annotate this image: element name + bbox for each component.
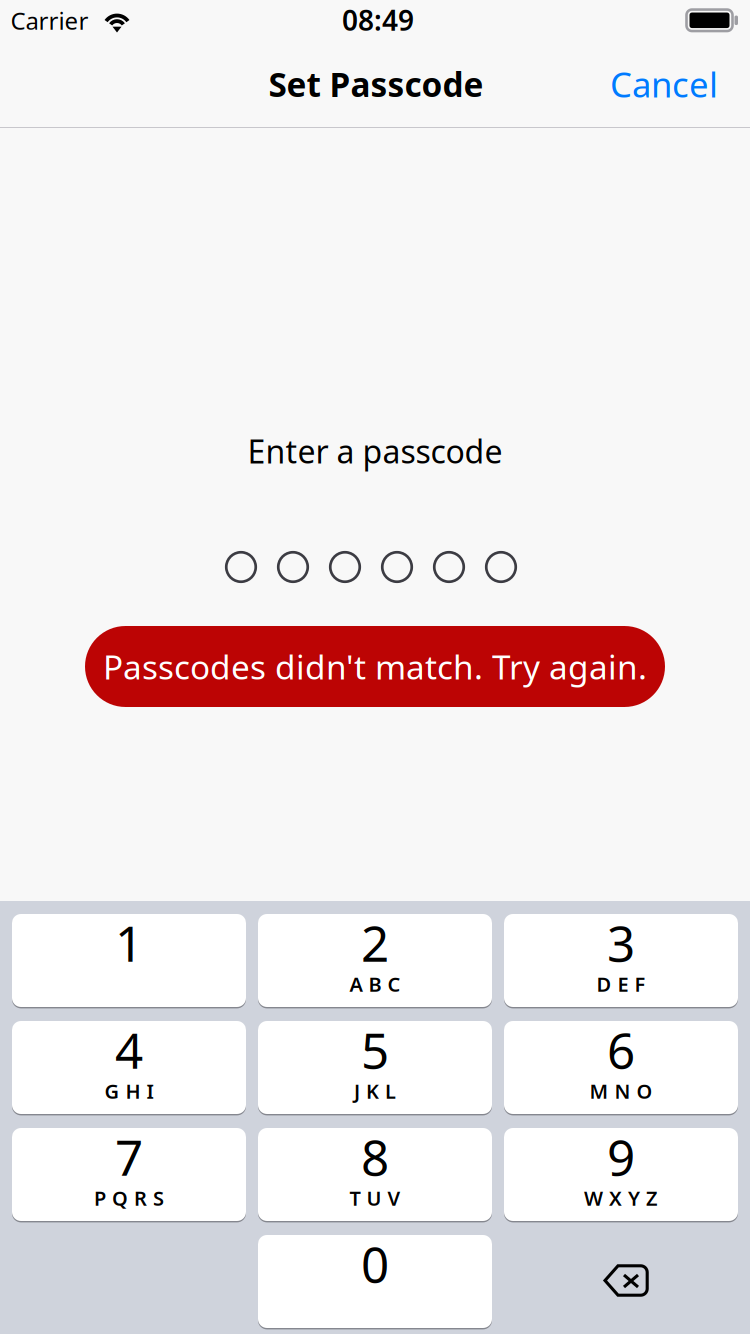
button[interactable]: 1 (12, 914, 246, 1007)
staticText: T U V (349, 1185, 400, 1211)
staticText: G H I (104, 1078, 153, 1104)
staticText: 5 (361, 1017, 389, 1082)
staticText: 1 (115, 910, 143, 975)
button[interactable]: 3 (504, 914, 738, 1007)
staticText: 2 (361, 910, 389, 975)
staticText: Set Passcode (268, 62, 483, 106)
button[interactable]: 4 (12, 1021, 246, 1114)
button[interactable]: Cancel (594, 47, 734, 121)
staticText: 8 (361, 1124, 389, 1189)
button[interactable]: 7 (12, 1128, 246, 1221)
staticText: Passcodes didn't match. Try again. (103, 644, 647, 689)
staticText: Carrier (10, 5, 88, 36)
staticText: 3 (607, 910, 635, 975)
staticText: Cancel (610, 61, 718, 107)
staticText: 6 (607, 1017, 635, 1082)
button[interactable]: 0 (258, 1235, 492, 1328)
staticText: 4 (115, 1017, 143, 1082)
button[interactable]: 8 (258, 1128, 492, 1221)
staticText: 0 (361, 1231, 389, 1296)
staticText: 9 (607, 1124, 635, 1189)
staticText: P Q R S (94, 1185, 164, 1211)
staticText: Enter a passcode (247, 430, 502, 472)
staticText: M N O (589, 1078, 652, 1104)
staticText: A B C (349, 971, 400, 997)
button[interactable]: 5 (258, 1021, 492, 1114)
staticText: 7 (115, 1124, 143, 1189)
staticText: D E F (596, 971, 645, 997)
staticText: J K L (354, 1078, 396, 1104)
staticText: W X Y Z (584, 1185, 658, 1211)
button[interactable]: 6 (504, 1021, 738, 1114)
button[interactable]: Delete (509, 1234, 743, 1327)
button[interactable]: 2 (258, 914, 492, 1007)
button[interactable]: 9 (504, 1128, 738, 1221)
staticText: 08:49 (342, 1, 414, 39)
